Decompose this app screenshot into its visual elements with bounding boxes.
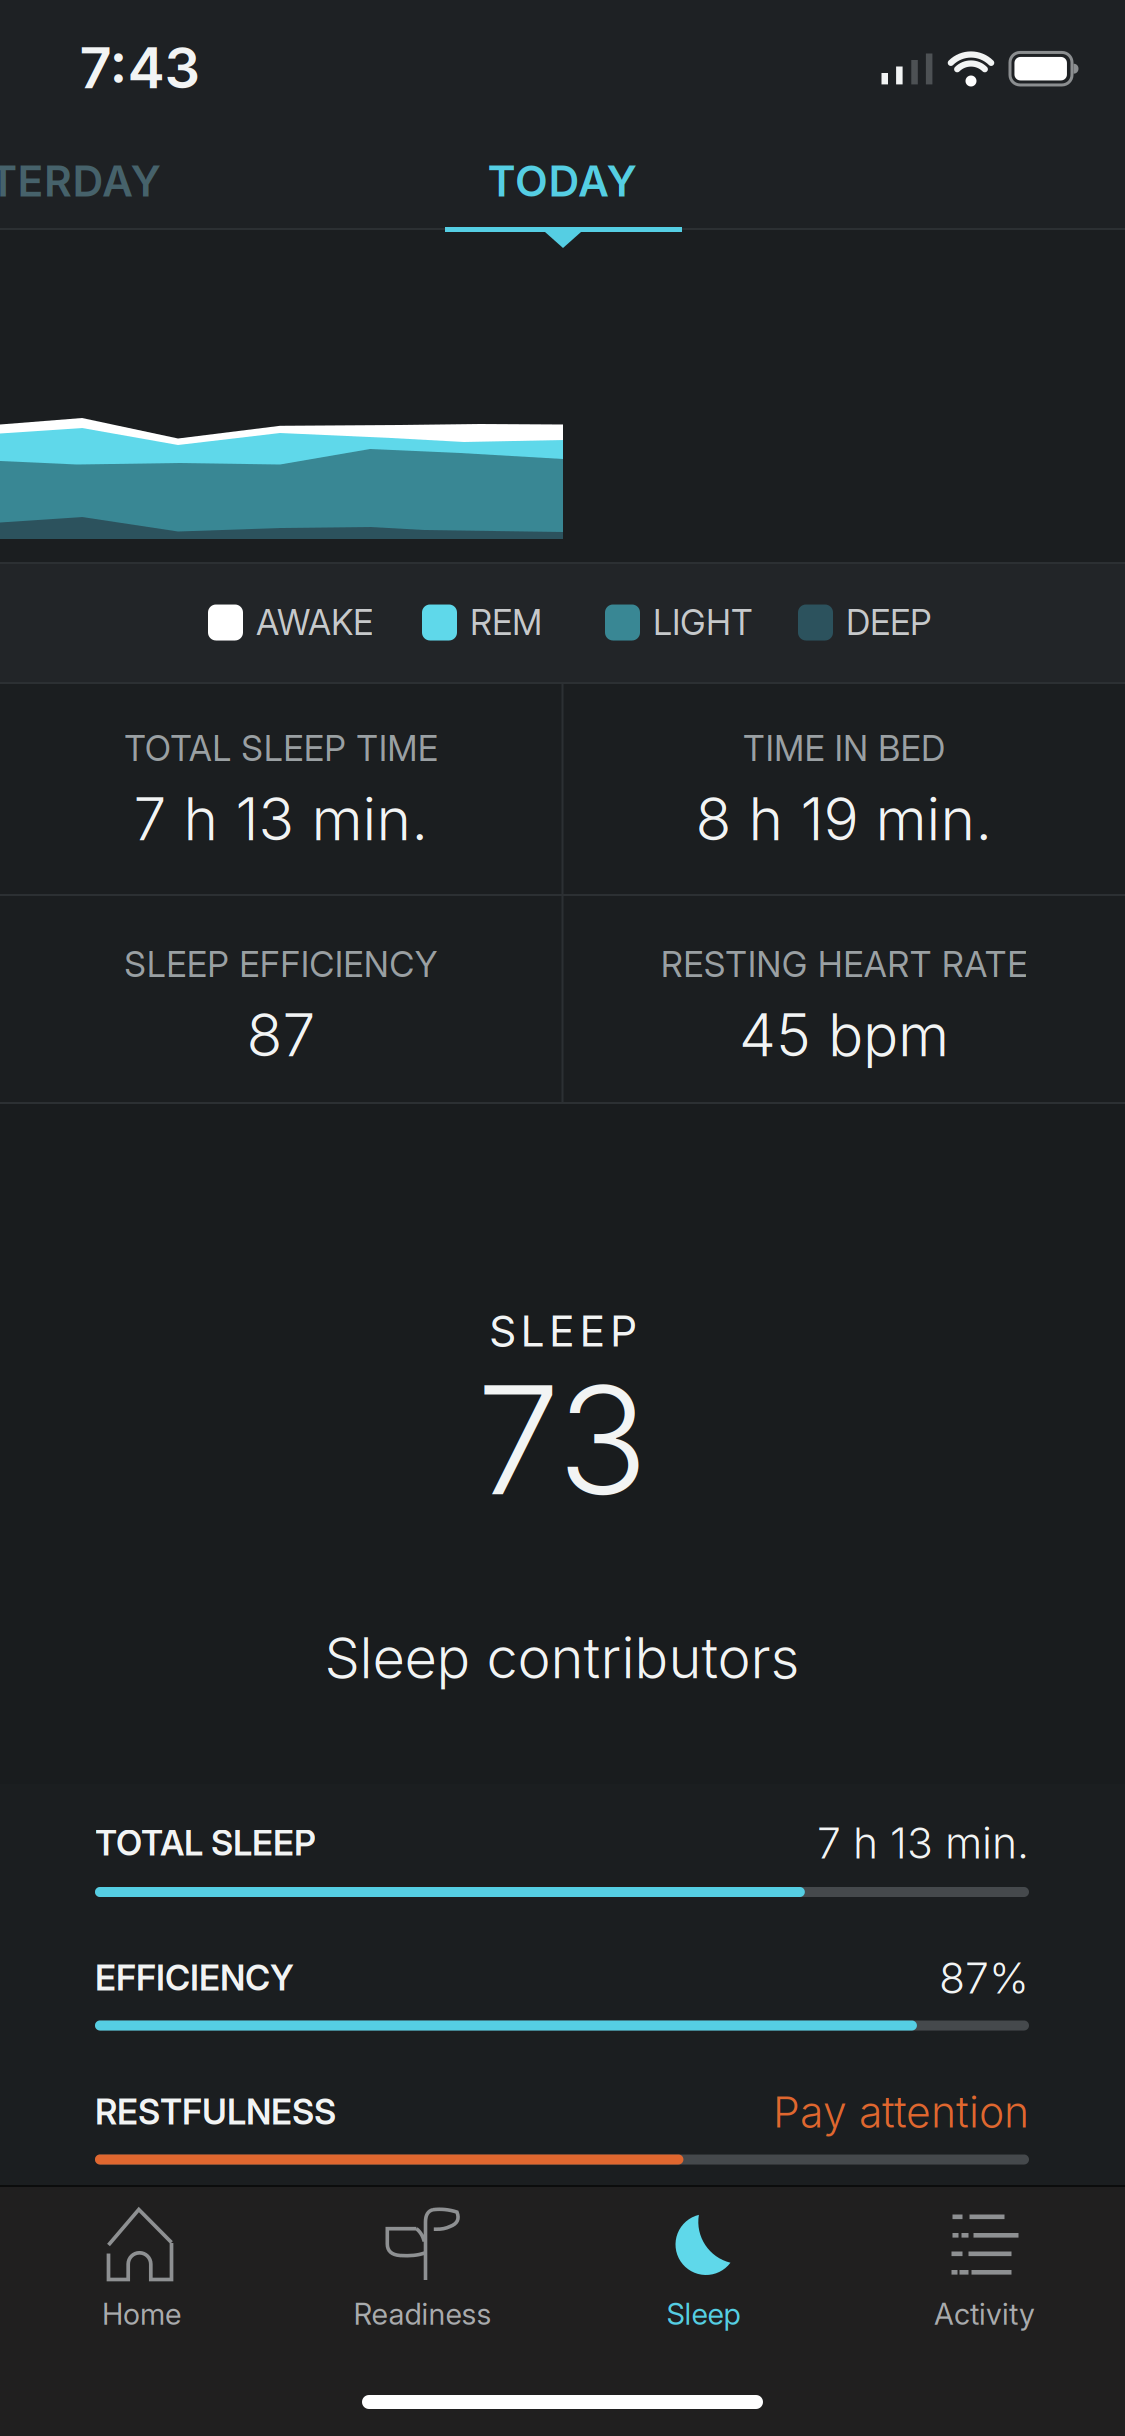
staticText: REM [470, 601, 542, 643]
staticText: 87 [246, 999, 315, 1070]
staticText: 8 h 19 min. [695, 783, 992, 854]
staticText: TIME IN BED [743, 727, 945, 769]
staticText: RESTING HEART RATE [661, 943, 1027, 985]
staticText: SLEEP [489, 1305, 637, 1357]
staticText: TOTAL SLEEP TIME [124, 727, 438, 769]
staticText: SLEEP EFFICIENCY [124, 943, 438, 985]
button[interactable]: Readiness [302, 2192, 542, 2342]
staticText: Sleep contributors [324, 1624, 799, 1692]
button[interactable]: TODAY [487, 155, 636, 207]
staticText: AWAKE [256, 601, 373, 643]
staticText: 45 bpm [739, 999, 949, 1070]
staticText: 7 h 13 min. [133, 783, 428, 854]
staticText: Sleep [666, 2296, 740, 2332]
staticText: 7 h 13 min. [817, 1817, 1029, 1869]
staticText: LIGHT [653, 601, 753, 643]
staticText: RESTFULNESS [95, 2091, 336, 2133]
staticText: Activity [934, 2296, 1035, 2332]
button[interactable]: Home [21, 2192, 261, 2342]
staticText: 87% [939, 1952, 1029, 2004]
staticText: 73 [476, 1350, 647, 1530]
button[interactable]: Activity [864, 2192, 1104, 2342]
staticText: DEEP [846, 601, 932, 643]
button[interactable]: Sleep [583, 2192, 823, 2342]
staticText: TODAY [487, 155, 636, 207]
staticText: EFFICIENCY [95, 1957, 294, 1999]
staticText: Pay attention [773, 2086, 1029, 2138]
staticText: Readiness [353, 2296, 491, 2332]
staticText: 7:43 [79, 34, 200, 102]
staticText: Home [102, 2296, 181, 2332]
staticText: TOTAL SLEEP [95, 1822, 316, 1864]
staticText: YESTERDAY [0, 155, 160, 207]
button[interactable]: YESTERDAY [0, 155, 160, 207]
